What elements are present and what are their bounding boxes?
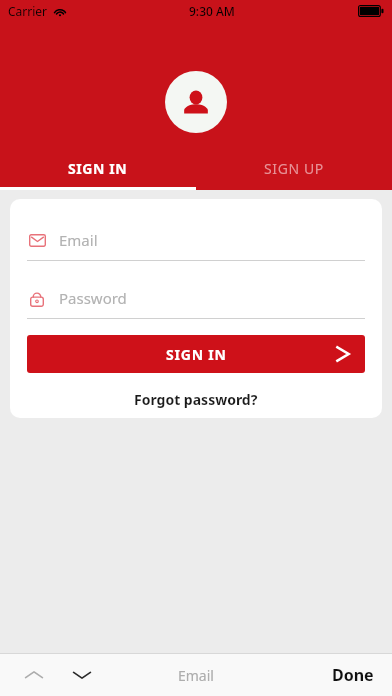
staticText: Email: [178, 666, 214, 685]
button[interactable]: Forgot password?: [10, 390, 382, 409]
button[interactable]: Done: [332, 664, 374, 686]
staticText: Email: [59, 230, 98, 250]
button[interactable]: SIGN UP: [196, 146, 392, 190]
staticText: Password: [59, 288, 127, 308]
button[interactable]: Email: [27, 228, 365, 261]
button[interactable]: SIGN IN: [0, 146, 196, 190]
staticText: Carrier: [8, 3, 48, 19]
staticText: 9:30 AM: [189, 3, 235, 19]
staticText: SIGN IN: [166, 345, 227, 364]
button[interactable]: SIGN IN: [27, 335, 365, 373]
staticText: Forgot password?: [134, 390, 258, 409]
staticText: SIGN IN: [68, 159, 128, 178]
button[interactable]: Previous field: [14, 655, 54, 695]
staticText: SIGN UP: [264, 159, 324, 178]
staticText: Done: [332, 664, 374, 686]
button[interactable]: Next field: [62, 655, 102, 695]
button[interactable]: Password: [27, 286, 365, 319]
